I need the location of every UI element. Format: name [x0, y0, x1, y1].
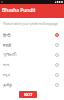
- staticText: मराठी: [3, 43, 12, 48]
- staticText: हिन्दी: [3, 33, 11, 38]
- button[interactable]: தமிழ்: [0, 80, 64, 90]
- staticText: বাংলা: [3, 63, 10, 67]
- button[interactable]: ಕನ್ನಡ: [0, 70, 64, 80]
- staticText: ગુજરાતી: [3, 53, 17, 57]
- button[interactable]: NEXT: [19, 91, 37, 98]
- staticText: Bhasha Pundit: [2, 7, 36, 14]
- button[interactable]: ગુજરાતી: [0, 50, 64, 60]
- staticText: Please select your preferred language: [3, 22, 59, 26]
- button[interactable]: मराठी: [0, 40, 64, 50]
- staticText: NEXT: [24, 93, 33, 97]
- button[interactable]: বাংলা: [0, 60, 64, 70]
- staticText: ಕನ್ನಡ: [3, 73, 11, 77]
- staticText: தமிழ்: [3, 83, 12, 87]
- button[interactable]: हिन्दी: [0, 30, 64, 40]
